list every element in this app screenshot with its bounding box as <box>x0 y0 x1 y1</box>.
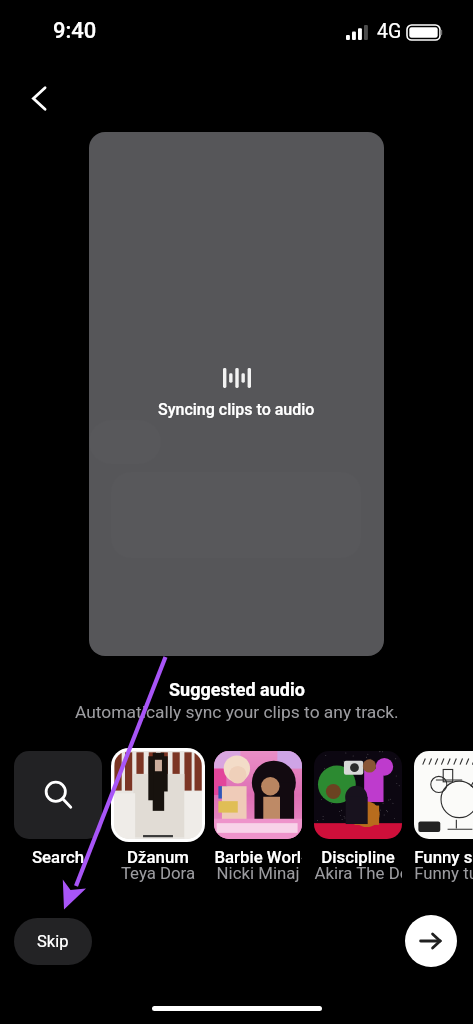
button[interactable]: Barbie World <box>214 751 302 887</box>
staticText: Discipline <box>314 847 402 867</box>
staticText: Funny tunes <box>414 863 473 883</box>
staticText: 4G <box>377 20 402 43</box>
staticText: Suggested audio <box>169 679 305 700</box>
staticText: Automatically sync your clips to any tra… <box>75 702 399 722</box>
staticText: Syncing clips to audio <box>158 400 315 419</box>
staticText: Search <box>14 847 102 867</box>
staticText: Teya Dora <box>114 863 202 883</box>
staticText: Skip <box>37 932 69 951</box>
staticText: Akira The Don <box>314 863 402 883</box>
button[interactable]: Džanum <box>114 751 202 887</box>
staticText: Funny song <box>414 847 473 867</box>
staticText: Barbie World <box>214 847 302 867</box>
button[interactable]: Discipline <box>314 751 402 887</box>
button[interactable]: Skip <box>14 918 92 965</box>
button[interactable]: Back <box>17 76 61 120</box>
staticText: Nicki Minaj <box>214 863 302 883</box>
button[interactable]: Search <box>14 751 102 867</box>
button[interactable]: Funny song <box>414 751 473 887</box>
button[interactable]: Next <box>405 915 457 967</box>
staticText: Džanum <box>114 847 202 867</box>
staticText: 9:40 <box>53 18 97 44</box>
